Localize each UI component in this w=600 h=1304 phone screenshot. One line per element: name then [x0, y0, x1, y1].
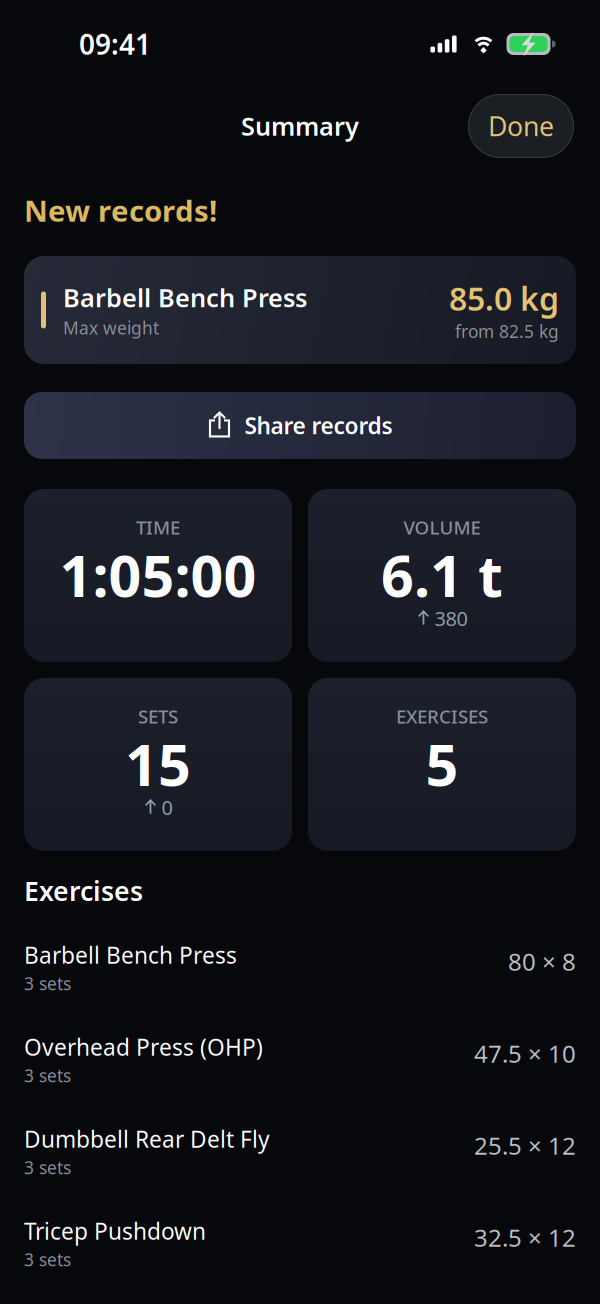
staticText: 15	[125, 726, 191, 802]
staticText: Done	[488, 108, 554, 144]
staticText: Dumbbell Rear Delt Fly	[24, 1124, 270, 1154]
staticText: 3 sets	[24, 1064, 71, 1087]
staticText: 0	[161, 794, 172, 820]
staticText: 6.1 t	[381, 537, 503, 613]
staticText: 09:41	[79, 25, 151, 63]
staticText: VOLUME	[403, 515, 480, 540]
staticText: Overhead Press (OHP)	[24, 1032, 263, 1062]
button[interactable]: Barbell Bench Press	[24, 256, 576, 364]
staticText: 80 × 8	[508, 945, 576, 977]
staticText: from 82.5 kg	[455, 320, 559, 343]
button[interactable]: Dumbbell Rear Delt Fly	[24, 1099, 576, 1191]
staticText: Max weight	[63, 316, 159, 339]
staticText: 25.5 × 12	[474, 1129, 576, 1161]
staticText: Share records	[244, 410, 392, 440]
button[interactable]: Barbell Bench Press	[24, 915, 576, 1007]
staticText: 3 sets	[24, 972, 71, 995]
staticText: 1:05:00	[59, 537, 256, 613]
staticText: 47.5 × 10	[474, 1037, 576, 1069]
staticText: Barbell Bench Press	[24, 940, 237, 970]
staticText: Exercises	[24, 873, 143, 908]
button[interactable]: Done	[468, 94, 574, 158]
staticText: 5	[425, 726, 458, 802]
staticText: EXERCISES	[396, 704, 488, 729]
staticText: 32.5 × 12	[474, 1221, 576, 1253]
staticText: 85.0 kg	[449, 277, 559, 320]
button[interactable]: Tricep Pushdown	[24, 1191, 576, 1283]
staticText: 380	[434, 605, 467, 631]
staticText: TIME	[136, 515, 180, 540]
button[interactable]: Share records	[24, 392, 576, 459]
button[interactable]: Overhead Press (OHP)	[24, 1007, 576, 1099]
staticText: Barbell Bench Press	[63, 281, 307, 314]
staticText: 3 sets	[24, 1156, 71, 1179]
staticText: New records!	[24, 191, 217, 230]
staticText: Summary	[241, 109, 359, 143]
staticText: SETS	[138, 704, 178, 729]
staticText: Tricep Pushdown	[24, 1216, 206, 1246]
staticText: 3 sets	[24, 1248, 71, 1271]
